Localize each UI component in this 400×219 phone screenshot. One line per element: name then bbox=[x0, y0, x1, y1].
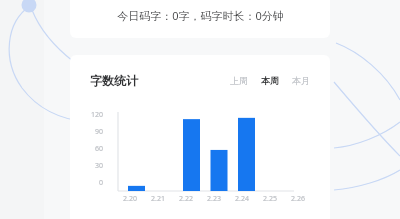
staticText: 30 bbox=[95, 161, 104, 171]
staticText: 90 bbox=[95, 127, 104, 137]
staticText: 120 bbox=[91, 110, 104, 120]
staticText: 2.23 bbox=[207, 194, 221, 204]
staticText: 本月 bbox=[292, 75, 310, 86]
button[interactable]: 今日码字：0字，码字时长：0分钟 bbox=[70, 0, 330, 38]
button[interactable]: 上周 bbox=[228, 73, 250, 88]
staticText: 2.26 bbox=[291, 194, 305, 204]
staticText: 2.21 bbox=[151, 194, 165, 204]
staticText: 2.20 bbox=[123, 194, 137, 204]
staticText: 2.22 bbox=[179, 194, 193, 204]
staticText: 本周 bbox=[261, 75, 279, 86]
button[interactable]: 本周 bbox=[259, 73, 281, 88]
staticText: 60 bbox=[95, 144, 104, 154]
staticText: 今日码字：0字，码字时长：0分钟 bbox=[117, 8, 284, 23]
staticText: 上周 bbox=[230, 75, 248, 86]
staticText: 0 bbox=[99, 178, 104, 188]
staticText: 2.24 bbox=[235, 194, 249, 204]
staticText: 字数统计 bbox=[90, 73, 138, 88]
staticText: 2.25 bbox=[263, 194, 277, 204]
button[interactable]: 本月 bbox=[290, 73, 312, 88]
